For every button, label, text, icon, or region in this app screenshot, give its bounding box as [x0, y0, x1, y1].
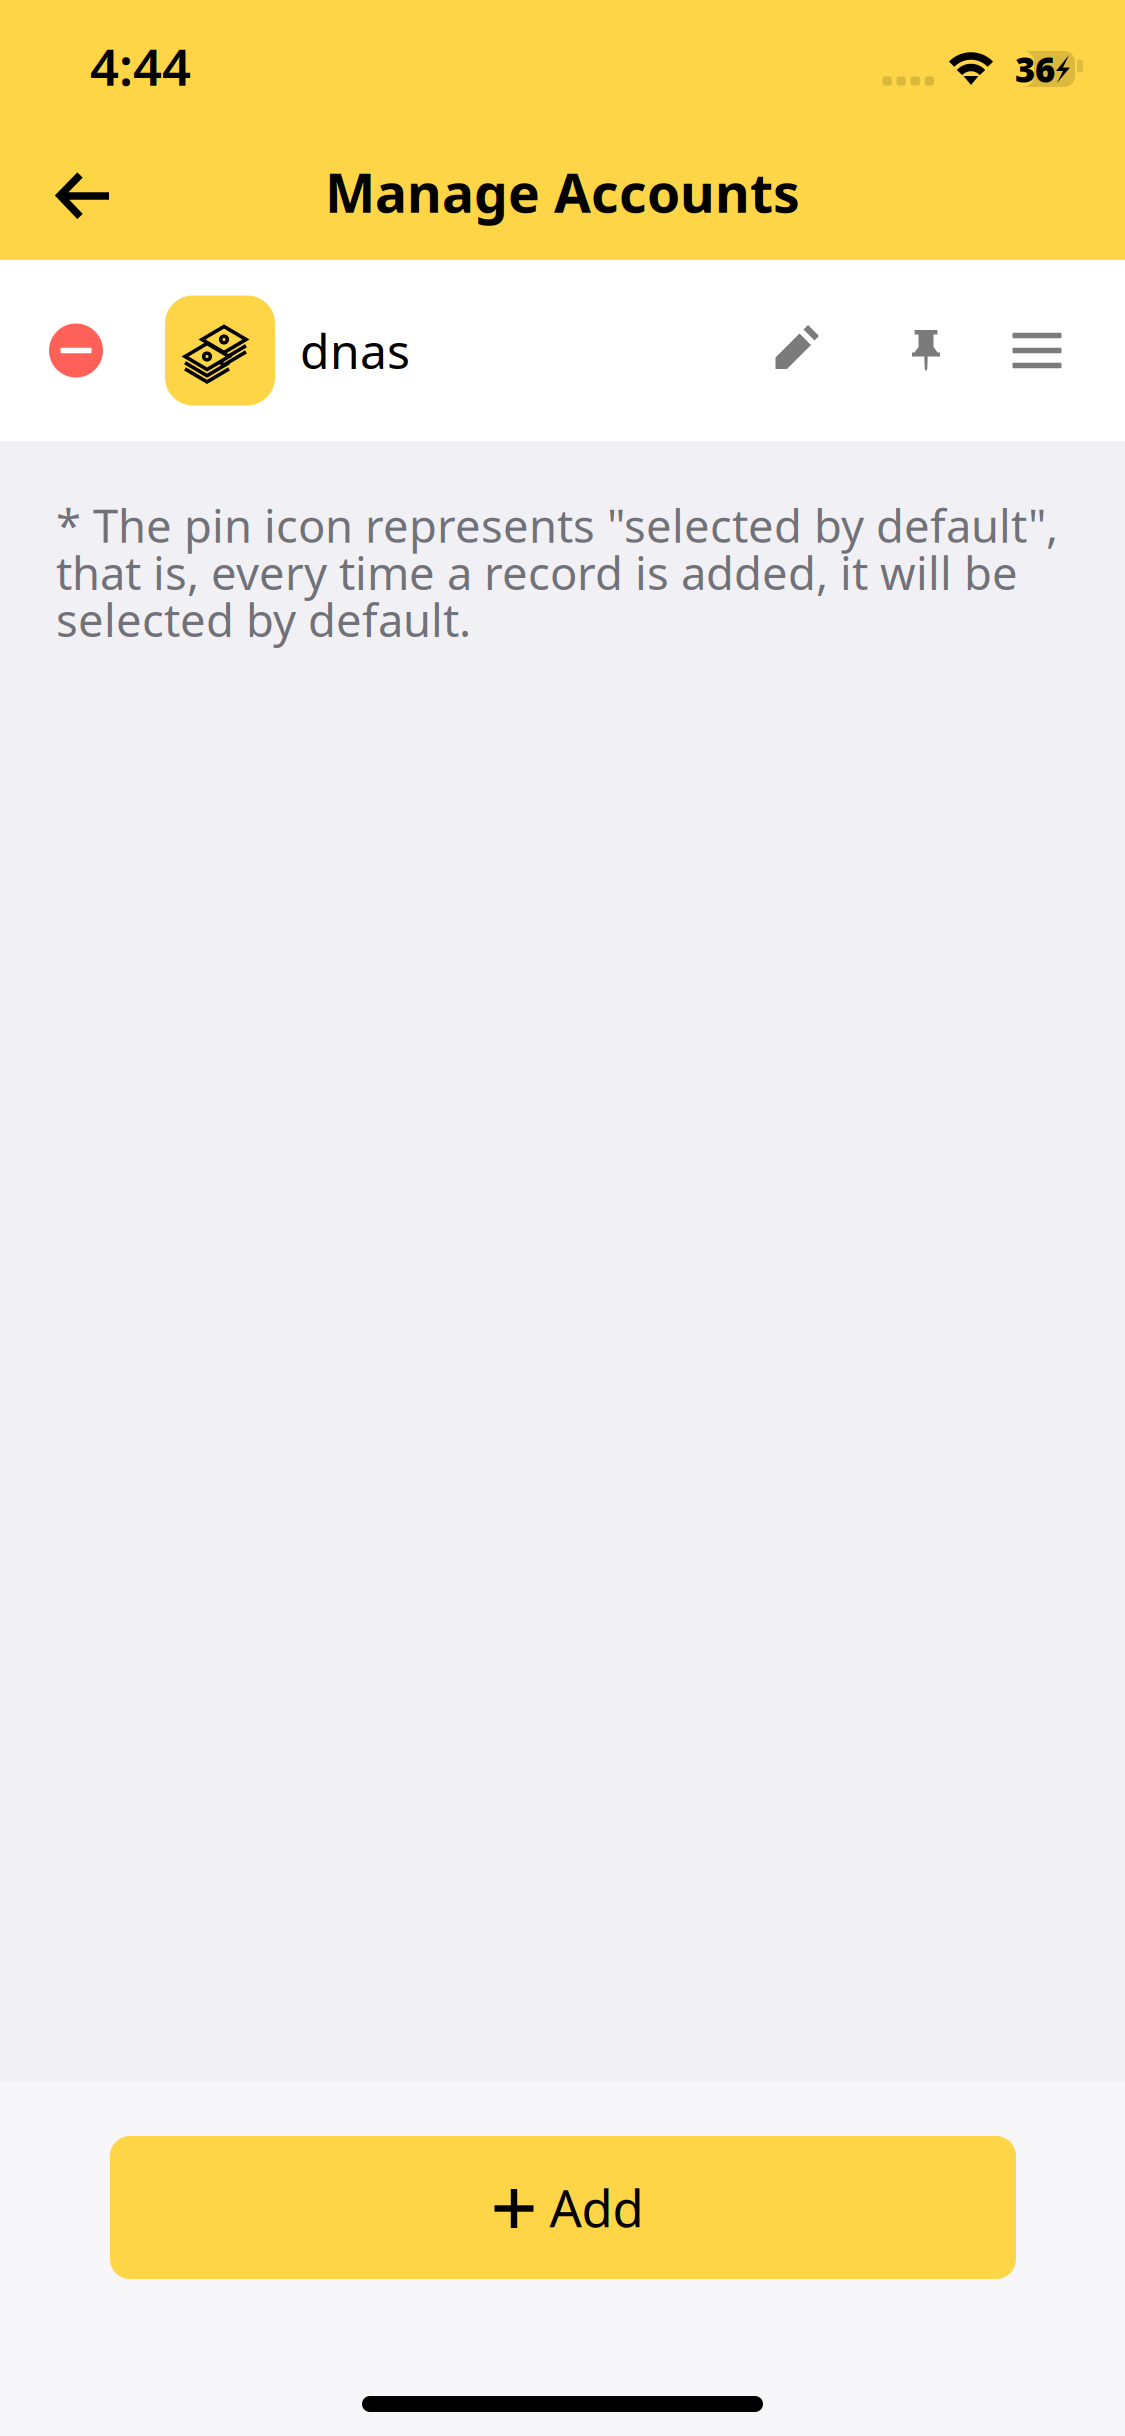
button[interactable]: Delete account [24, 280, 128, 420]
staticText: 4:44 [90, 32, 191, 100]
staticText: dnas [300, 319, 410, 382]
button[interactable]: Add [110, 2136, 1016, 2279]
staticText: Add [549, 2174, 643, 2241]
button[interactable]: Back [30, 133, 140, 259]
staticText: Manage Accounts [325, 157, 800, 227]
button[interactable]: Edit [725, 280, 869, 420]
button[interactable]: Reorder [983, 280, 1091, 420]
staticText: * The pin icon represents "selected by d… [56, 495, 1058, 650]
staticText: 36 [1015, 46, 1055, 92]
button[interactable]: Pin as default [869, 280, 983, 420]
